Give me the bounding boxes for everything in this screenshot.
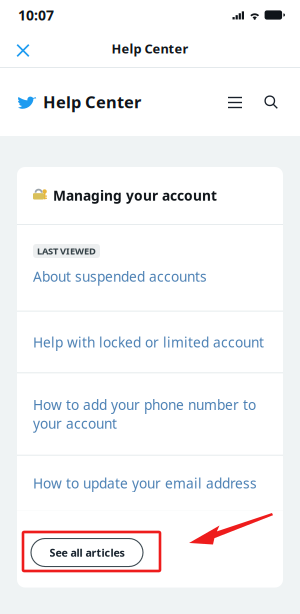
button[interactable]: Search [258, 89, 284, 115]
button[interactable]: Menu [222, 89, 248, 115]
staticText: How to add your phone number to your acc… [33, 395, 256, 433]
staticText: Managing your account [53, 186, 217, 205]
staticText: See all articles [49, 545, 124, 560]
staticText: Help Center [43, 91, 141, 113]
button[interactable]: See all articles [31, 538, 143, 566]
staticText: Help with locked or limited account [33, 333, 264, 351]
staticText: 10:07 [18, 5, 54, 25]
staticText: Help Center [111, 40, 188, 57]
staticText: LAST VIEWED [37, 245, 96, 257]
button[interactable]: How to update your email address [17, 456, 283, 510]
button[interactable]: Close [7, 30, 39, 66]
button[interactable]: LAST VIEWED [17, 225, 283, 311]
staticText: How to update your email address [33, 474, 257, 492]
button[interactable]: Help with locked or limited account [17, 312, 283, 372]
staticText: About suspended accounts [33, 267, 207, 286]
button[interactable]: How to add your phone number to your acc… [17, 373, 283, 455]
